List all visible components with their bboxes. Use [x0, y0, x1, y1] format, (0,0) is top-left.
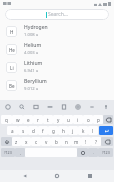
button[interactable]: w: [12, 115, 23, 124]
button[interactable]: x: [21, 137, 31, 146]
staticText: t: [47, 117, 49, 123]
button[interactable]: !: [81, 137, 91, 146]
staticText: j: [72, 128, 74, 134]
button[interactable]: r: [33, 115, 43, 124]
staticText: x: [25, 139, 28, 145]
button[interactable]: Back: [17, 170, 33, 182]
button[interactable]: Li: [0, 58, 114, 76]
staticText: 9.012 u: [24, 86, 39, 92]
staticText: Li: [10, 65, 14, 71]
staticText: ?123: [4, 150, 12, 155]
button[interactable]: Be: [0, 76, 114, 94]
staticText: d: [32, 128, 35, 134]
staticText: ,: [20, 150, 21, 155]
staticText: 4.003 u: [24, 50, 39, 56]
button[interactable]: j: [68, 126, 78, 135]
button[interactable]: Backspace: [103, 115, 113, 124]
button[interactable]: Search: [17, 102, 27, 112]
button[interactable]: z: [12, 137, 21, 146]
staticText: z: [15, 139, 18, 145]
button[interactable]: l: [88, 126, 98, 135]
button[interactable]: More options: [87, 102, 97, 112]
staticText: v: [45, 139, 48, 145]
staticText: Search...: [48, 11, 68, 18]
button[interactable]: a: [7, 126, 18, 135]
button[interactable]: Settings: [73, 102, 83, 112]
staticText: a: [11, 128, 14, 134]
staticText: H: [10, 29, 14, 35]
staticText: Beryllium: [24, 78, 47, 85]
button[interactable]: h: [58, 126, 68, 135]
button[interactable]: v: [41, 137, 51, 146]
button[interactable]: Recent apps: [82, 170, 98, 182]
staticText: y: [57, 117, 60, 123]
staticText: p: [97, 117, 100, 123]
staticText: !: [85, 139, 87, 145]
button[interactable]: Enter: [99, 126, 113, 135]
button[interactable]: Voice input: [101, 102, 111, 112]
staticText: Hydrogen: [24, 24, 48, 31]
button[interactable]: k: [78, 126, 88, 135]
staticText: ?: [95, 139, 97, 145]
staticText: l: [92, 128, 94, 134]
button[interactable]: d: [28, 126, 38, 135]
staticText: k: [82, 128, 85, 134]
button[interactable]: t: [43, 115, 53, 124]
button[interactable]: Emoji: [77, 148, 88, 157]
button[interactable]: Shift: [1, 137, 12, 146]
staticText: n: [65, 139, 68, 145]
staticText: Helium: [24, 42, 42, 49]
button[interactable]: g: [48, 126, 58, 135]
staticText: o: [87, 117, 90, 123]
staticText: f: [42, 128, 44, 134]
staticText: b: [55, 139, 58, 145]
staticText: m: [74, 139, 79, 145]
button[interactable]: m: [71, 137, 81, 146]
staticText: i: [77, 117, 79, 123]
button[interactable]: p: [93, 115, 103, 124]
staticText: Be: [9, 83, 15, 89]
button[interactable]: ,: [15, 148, 25, 157]
button[interactable]: o: [83, 115, 93, 124]
staticText: .: [93, 150, 94, 155]
button[interactable]: Search...: [5, 9, 109, 20]
button[interactable]: He: [0, 40, 114, 58]
button[interactable]: q: [1, 115, 12, 124]
button[interactable]: f: [38, 126, 48, 135]
button[interactable]: n: [61, 137, 71, 146]
button[interactable]: e: [23, 115, 33, 124]
button[interactable]: i: [73, 115, 83, 124]
staticText: ?123: [102, 150, 110, 155]
button[interactable]: Stickers: [45, 102, 55, 112]
staticText: u: [67, 117, 70, 123]
staticText: h: [62, 128, 65, 134]
staticText: He: [9, 47, 15, 53]
button[interactable]: GIF: [31, 102, 41, 112]
staticText: g: [52, 128, 55, 134]
staticText: r: [37, 117, 39, 123]
staticText: 6.941 u: [24, 68, 39, 74]
button[interactable]: ?: [91, 137, 101, 146]
button[interactable]: Delete: [101, 137, 113, 146]
staticText: Lithium: [24, 60, 43, 67]
staticText: 1.008 u: [24, 32, 39, 38]
staticText: q: [5, 117, 8, 123]
button[interactable]: ?123: [98, 148, 113, 157]
button[interactable]: b: [51, 137, 61, 146]
staticText: w: [16, 117, 20, 123]
staticText: c: [35, 139, 38, 145]
button[interactable]: u: [63, 115, 73, 124]
staticText: e: [27, 117, 30, 123]
button[interactable]: H: [0, 22, 114, 40]
button[interactable]: Google assistant: [3, 102, 13, 112]
button[interactable]: Clipboard: [59, 102, 69, 112]
button[interactable]: ?123: [1, 148, 15, 157]
button[interactable]: s: [18, 126, 28, 135]
button[interactable]: Home: [49, 170, 65, 182]
button[interactable]: y: [53, 115, 63, 124]
button[interactable]: c: [31, 137, 41, 146]
staticText: s: [22, 128, 25, 134]
